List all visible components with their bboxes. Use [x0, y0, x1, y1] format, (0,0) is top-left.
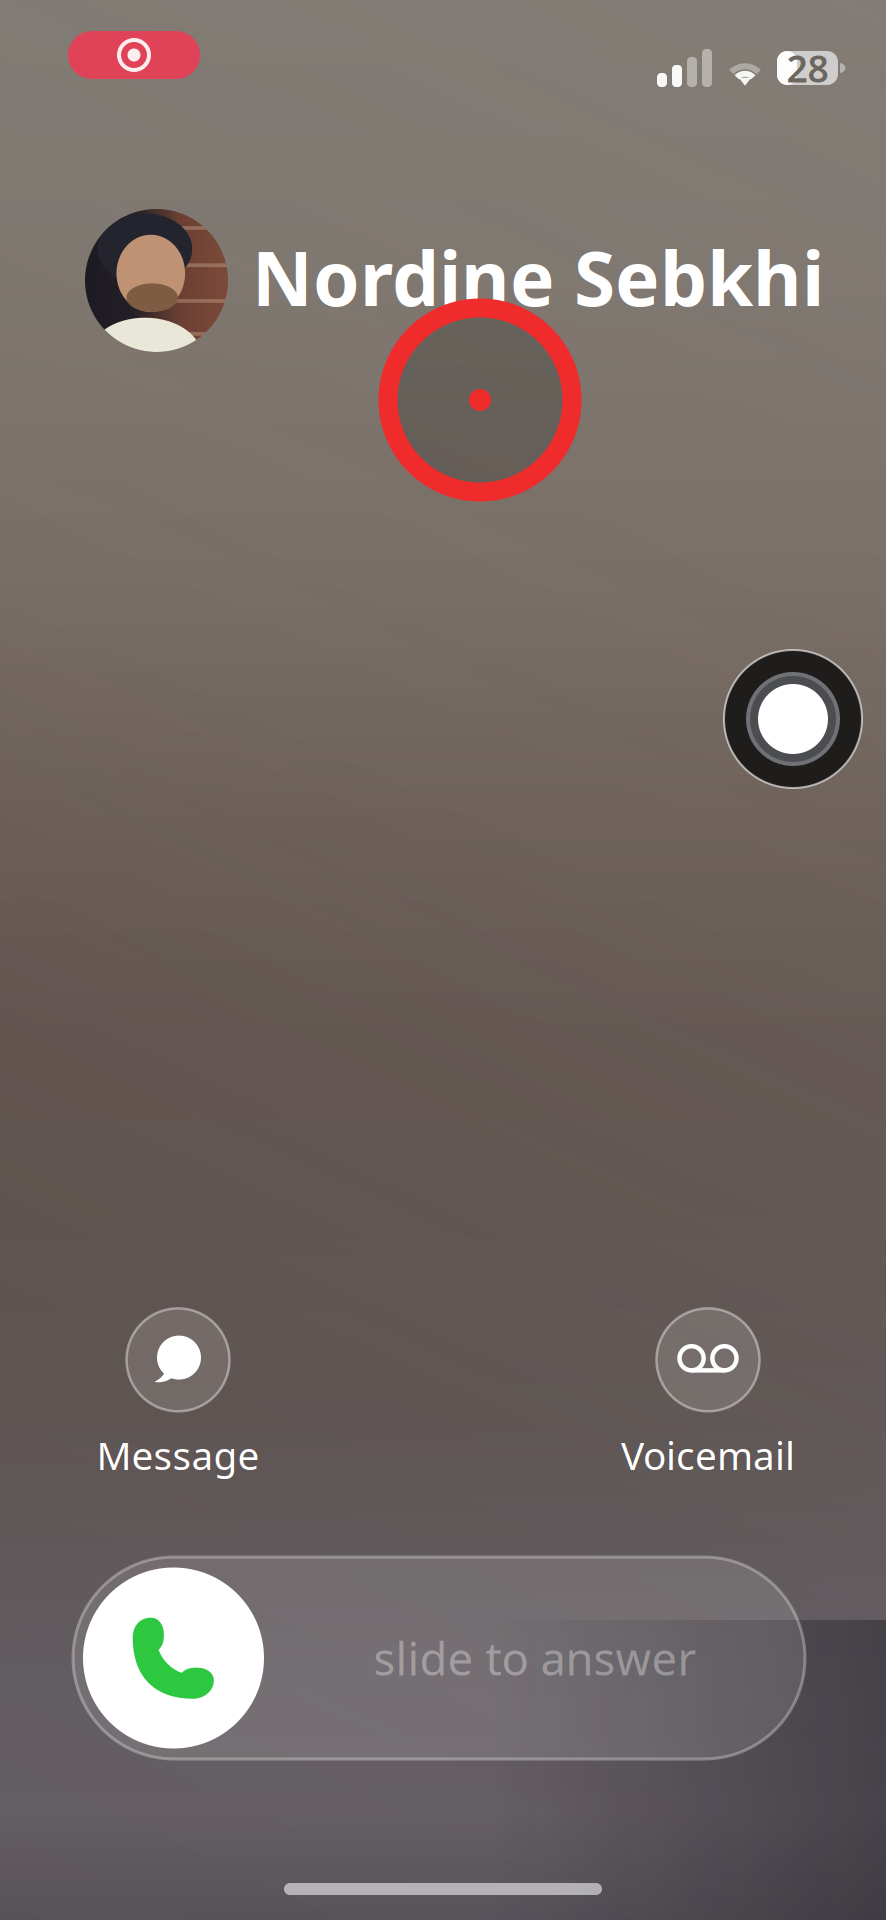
staticText: slide to answer: [373, 1628, 696, 1688]
button[interactable]: Voicemail: [558, 1307, 858, 1482]
button[interactable]: slide to answer: [78, 1557, 810, 1759]
button[interactable]: Message: [28, 1307, 328, 1482]
staticText: Message: [96, 1429, 259, 1481]
staticText: 28: [786, 43, 828, 93]
staticText: Voicemail: [621, 1429, 795, 1481]
staticText: Nordine Sebkhi: [252, 227, 824, 327]
